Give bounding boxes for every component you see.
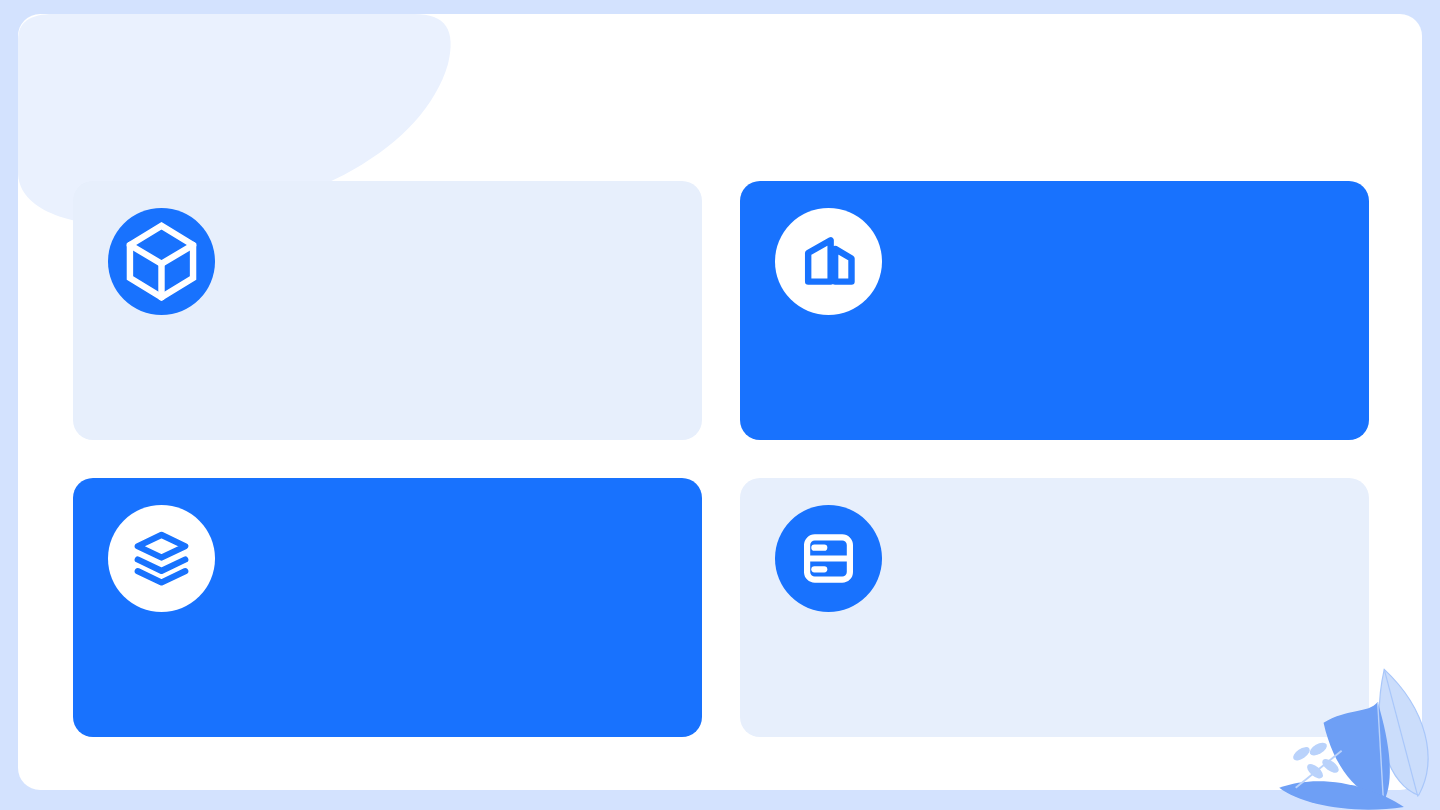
button[interactable]: Layers (73, 478, 702, 737)
button[interactable]: Packages (73, 181, 702, 440)
button[interactable]: Buildings (740, 181, 1369, 440)
button[interactable]: Servers (740, 478, 1369, 737)
